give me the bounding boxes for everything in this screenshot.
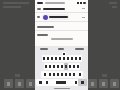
button[interactable]: Key xyxy=(52,71,56,78)
button[interactable]: Key xyxy=(76,71,83,78)
button[interactable]: Key xyxy=(52,63,56,70)
button[interactable]: Expand recipients xyxy=(81,6,86,11)
button[interactable]: Key xyxy=(60,63,64,70)
button[interactable]: Period xyxy=(73,79,78,86)
button[interactable]: Key xyxy=(68,71,72,78)
button[interactable]: Key xyxy=(58,55,62,62)
button[interactable]: Key xyxy=(68,63,72,70)
button[interactable] xyxy=(42,14,69,20)
button[interactable]: Key xyxy=(66,55,70,62)
button[interactable]: Key xyxy=(54,55,58,62)
button[interactable] xyxy=(35,34,88,40)
button[interactable] xyxy=(70,46,88,52)
button[interactable]: Key xyxy=(42,55,46,62)
button[interactable]: Key xyxy=(46,55,50,62)
button[interactable]: Comma xyxy=(44,79,49,86)
button[interactable]: Symbols xyxy=(36,79,44,86)
button[interactable]: Key xyxy=(48,71,52,78)
button[interactable]: Key xyxy=(56,63,60,70)
button[interactable]: Key xyxy=(64,71,68,78)
button[interactable]: Expand recipients xyxy=(35,5,88,12)
button[interactable]: Key xyxy=(72,63,76,70)
button[interactable]: Key xyxy=(64,63,68,70)
button[interactable]: Key xyxy=(72,71,76,78)
button[interactable]: Key xyxy=(70,55,74,62)
button[interactable]: Enter xyxy=(78,79,87,86)
button[interactable]: Remove recipient xyxy=(81,15,86,20)
button[interactable] xyxy=(35,24,88,30)
button[interactable]: Key xyxy=(56,71,60,78)
button[interactable]: Key xyxy=(50,55,54,62)
button[interactable]: Key xyxy=(78,55,82,62)
button[interactable]: Key xyxy=(74,55,78,62)
button[interactable]: Key xyxy=(62,55,66,62)
button[interactable]: Key xyxy=(48,63,52,70)
button[interactable]: Key xyxy=(60,71,64,78)
button[interactable] xyxy=(52,46,70,52)
button[interactable]: Space xyxy=(49,79,73,86)
button[interactable]: Remove recipient xyxy=(35,13,88,21)
button[interactable]: Key xyxy=(76,63,80,70)
button[interactable] xyxy=(35,46,52,52)
button[interactable]: Key xyxy=(41,71,48,78)
button[interactable]: Key xyxy=(44,63,48,70)
